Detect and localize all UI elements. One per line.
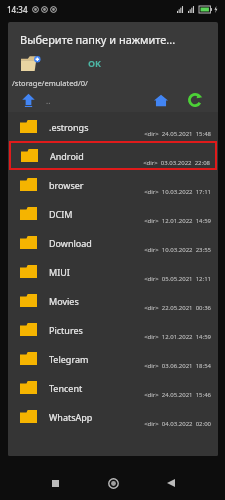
staticText: browser bbox=[49, 179, 84, 191]
staticText: <dir> 04.03.2022 02:00 bbox=[144, 420, 211, 428]
button[interactable]: MIUI bbox=[8, 257, 218, 286]
button[interactable]: Обновить bbox=[184, 89, 206, 111]
staticText: DCIM bbox=[49, 208, 73, 220]
staticText: Download bbox=[49, 237, 92, 249]
staticText: <dir> 24.05.2021 15:46 bbox=[144, 391, 211, 399]
staticText: OK bbox=[88, 57, 102, 69]
button[interactable]: Домой bbox=[150, 89, 172, 111]
button[interactable]: DCIM bbox=[8, 199, 218, 228]
staticText: <dir> 03.03.2022 22:08 bbox=[143, 159, 210, 167]
button[interactable]: Создать папку bbox=[14, 49, 46, 77]
staticText: .. bbox=[46, 95, 51, 106]
button[interactable]: Telegram bbox=[8, 344, 218, 373]
staticText: Android bbox=[50, 150, 84, 162]
staticText: <dir> 12.01.2022 14:59 bbox=[144, 217, 211, 225]
staticText: <dir> 12.01.2022 14:59 bbox=[144, 333, 211, 341]
button[interactable]: Назад bbox=[153, 466, 189, 500]
button[interactable]: browser bbox=[8, 170, 218, 199]
button[interactable]: .estrongs bbox=[8, 112, 218, 141]
staticText: .estrongs bbox=[49, 121, 89, 133]
staticText: MIUI bbox=[49, 266, 70, 278]
button[interactable]: Вверх bbox=[18, 90, 38, 110]
button[interactable]: Недавние bbox=[37, 466, 73, 500]
staticText: <dir> 22.05.2021 00:36 bbox=[144, 304, 211, 312]
button[interactable]: Android bbox=[9, 141, 217, 170]
staticText: <dir> 03.06.2021 18:54 bbox=[144, 362, 211, 370]
button[interactable]: Movies bbox=[8, 286, 218, 315]
staticText: <dir> 10.03.2022 17:11 bbox=[144, 188, 211, 196]
staticText: WhatsApp bbox=[49, 411, 93, 423]
button[interactable]: Tencent bbox=[8, 373, 218, 402]
staticText: Movies bbox=[49, 295, 79, 307]
button[interactable]: Pictures bbox=[8, 315, 218, 344]
staticText: <dir> 24.05.2021 15:48 bbox=[144, 130, 211, 138]
staticText: <dir> 10.03.2022 23:55 bbox=[144, 246, 211, 254]
button[interactable]: WhatsApp bbox=[8, 402, 218, 431]
button[interactable]: Download bbox=[8, 228, 218, 257]
staticText: /storage/emulated/0/ bbox=[12, 78, 88, 88]
staticText: Выберите папку и нажмите... bbox=[20, 32, 176, 47]
button[interactable]: Домой bbox=[95, 466, 131, 500]
staticText: Tencent bbox=[49, 382, 83, 394]
staticText: 14:34 bbox=[7, 4, 28, 15]
staticText: Telegram bbox=[49, 353, 89, 365]
staticText: Pictures bbox=[49, 324, 83, 336]
button[interactable]: OK bbox=[76, 50, 114, 76]
staticText: <dir> 05.05.2021 12:11 bbox=[144, 275, 211, 283]
